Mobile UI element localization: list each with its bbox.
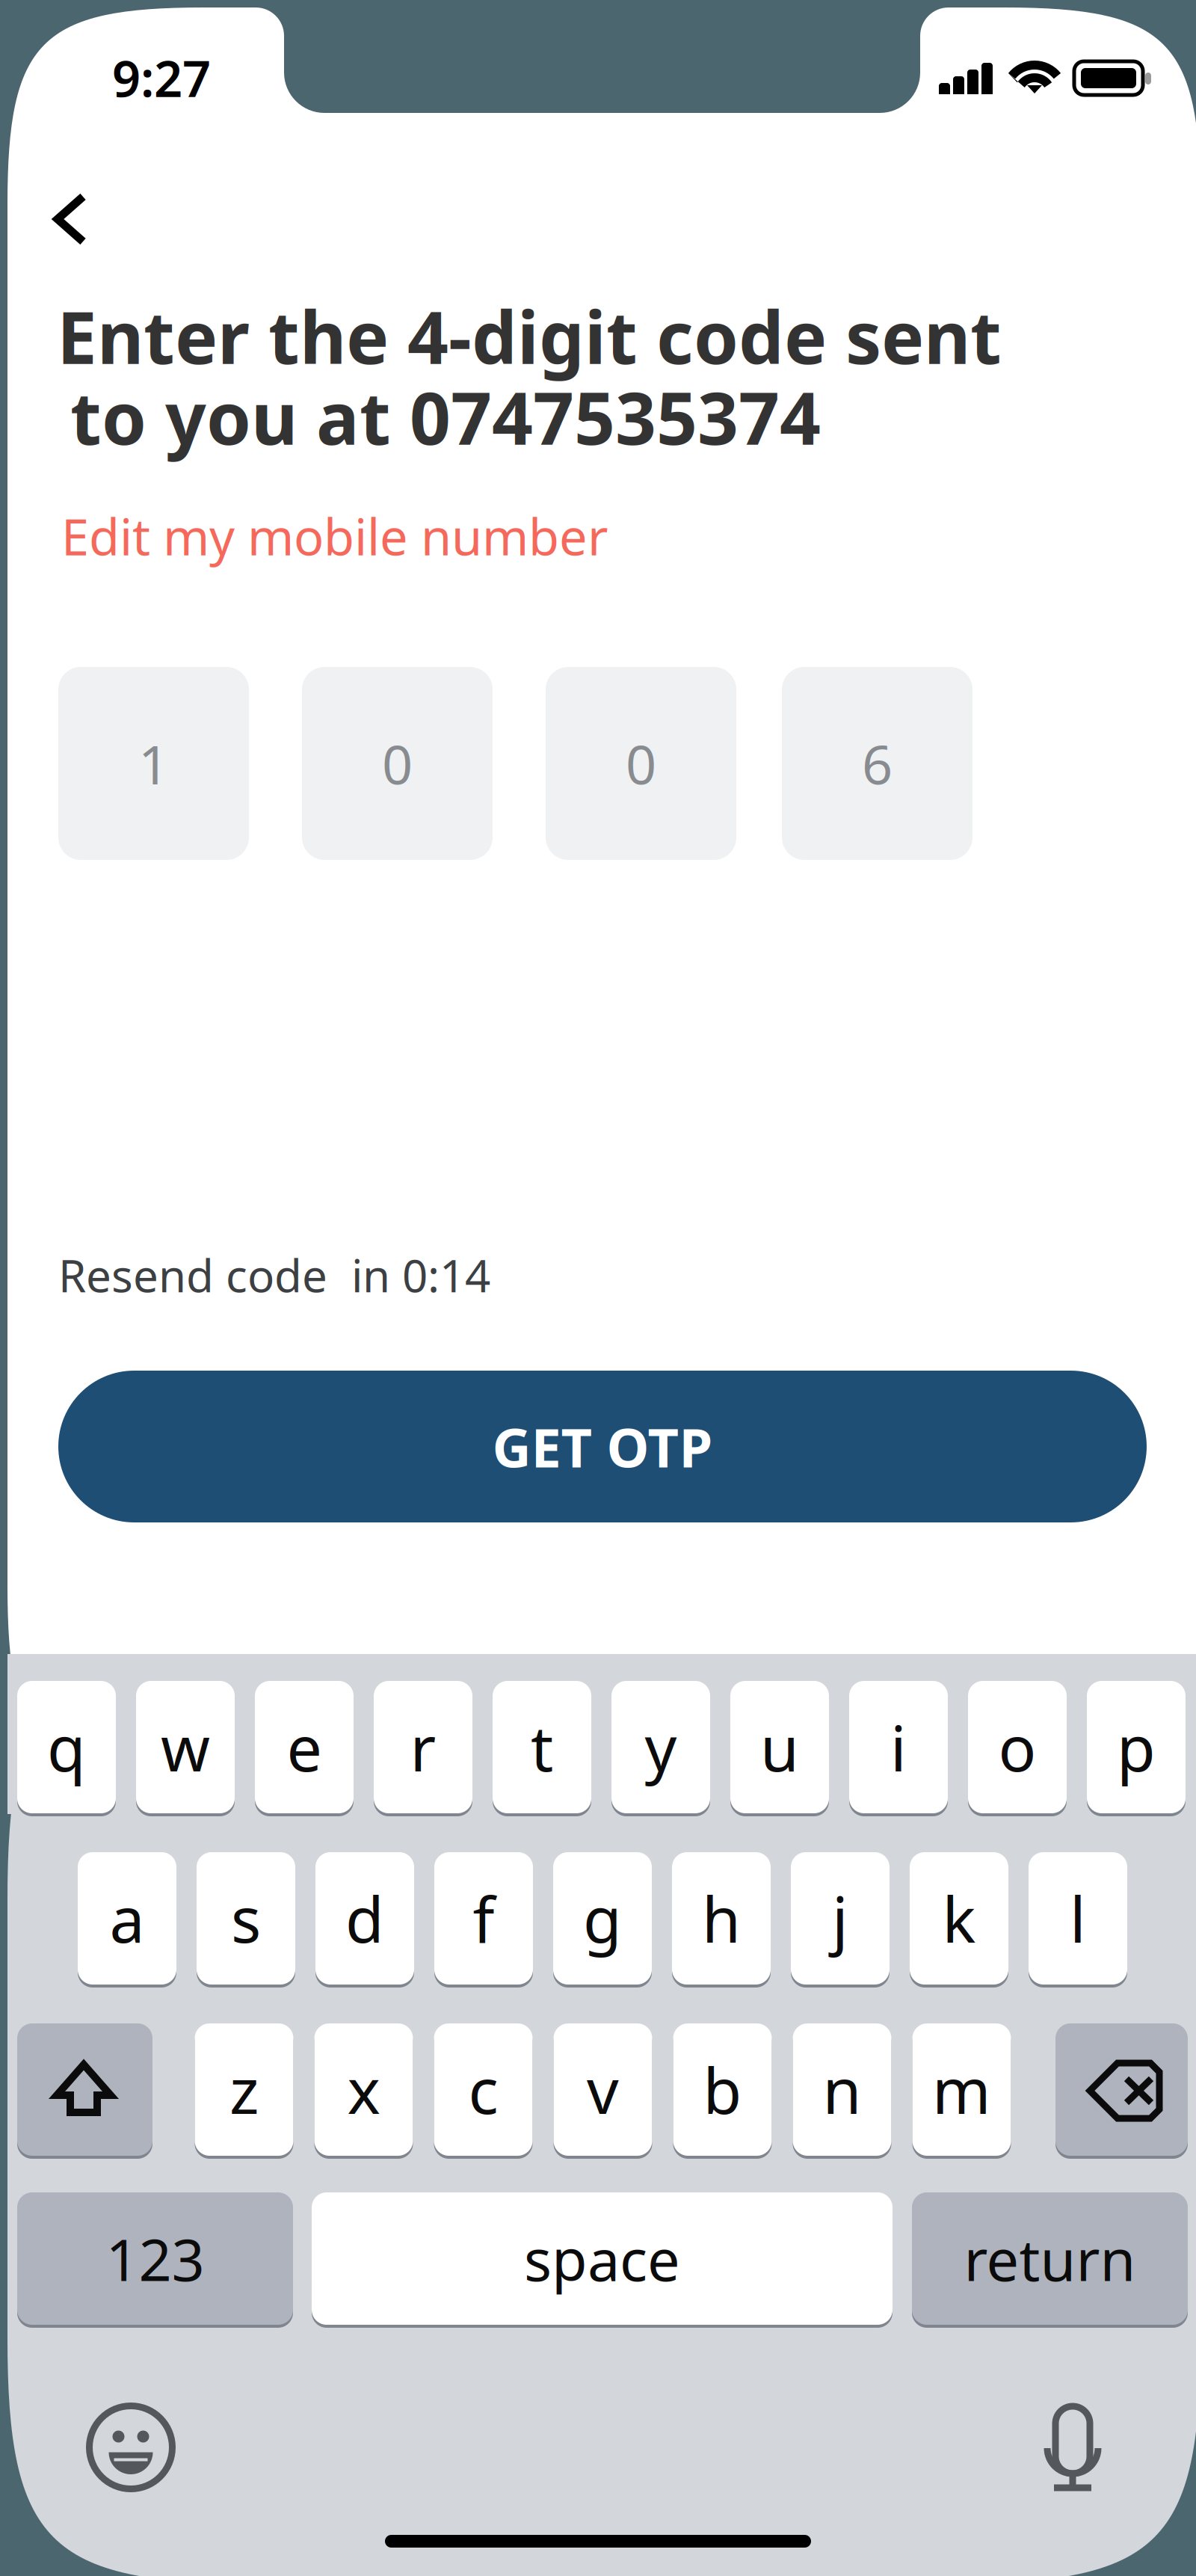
button[interactable]: l: [1029, 1852, 1127, 1985]
staticText: Resend code in 0:14: [58, 1245, 490, 1305]
staticText: to you at 0747535374: [70, 369, 821, 465]
button[interactable]: Back: [37, 179, 142, 284]
staticText: l: [1070, 1877, 1086, 1960]
staticText: GET OTP: [492, 1411, 713, 1482]
button[interactable]: t: [493, 1681, 591, 1813]
button[interactable]: a: [78, 1852, 176, 1985]
staticText: g: [583, 1877, 622, 1960]
button[interactable]: y: [611, 1681, 710, 1813]
staticText: e: [287, 1705, 322, 1789]
staticText: n: [823, 2048, 861, 2131]
button[interactable]: Shift: [17, 2023, 152, 2156]
button[interactable]: m: [912, 2023, 1011, 2156]
staticText: q: [47, 1705, 86, 1789]
staticText: t: [531, 1705, 553, 1789]
button[interactable]: q: [17, 1681, 116, 1813]
staticText: u: [760, 1705, 799, 1789]
staticText: r: [410, 1705, 436, 1789]
staticText: w: [161, 1705, 210, 1789]
button[interactable]: 0: [546, 667, 736, 860]
button[interactable]: g: [553, 1852, 652, 1985]
staticText: k: [942, 1877, 976, 1960]
staticText: i: [890, 1705, 907, 1789]
button[interactable]: w: [136, 1681, 235, 1813]
staticText: a: [110, 1877, 145, 1960]
button[interactable]: r: [374, 1681, 472, 1813]
staticText: s: [231, 1877, 261, 1960]
staticText: 9:27: [112, 45, 211, 111]
staticText: j: [832, 1877, 848, 1960]
staticText: h: [702, 1877, 741, 1960]
button[interactable]: b: [673, 2023, 772, 2156]
staticText: d: [345, 1877, 384, 1960]
button[interactable]: 123: [17, 2192, 293, 2325]
button[interactable]: Dictation: [1045, 2409, 1100, 2492]
button[interactable]: c: [434, 2023, 533, 2156]
button[interactable]: p: [1087, 1681, 1186, 1813]
button[interactable]: space: [312, 2192, 893, 2325]
button[interactable]: GET OTP: [58, 1371, 1147, 1522]
button[interactable]: 1: [58, 667, 249, 860]
button[interactable]: s: [197, 1852, 295, 1985]
button[interactable]: v: [554, 2023, 652, 2156]
button[interactable]: return: [912, 2192, 1188, 2325]
button[interactable]: Edit my mobile number: [61, 508, 734, 565]
staticText: 1: [138, 728, 169, 799]
staticText: Enter the 4-digit code sent: [57, 288, 1002, 384]
button[interactable]: n: [793, 2023, 891, 2156]
staticText: space: [524, 2220, 680, 2297]
staticText: b: [703, 2048, 742, 2131]
button[interactable]: Emoji: [89, 2406, 172, 2489]
staticText: 123: [106, 2220, 204, 2297]
button[interactable]: i: [849, 1681, 948, 1813]
button[interactable]: z: [195, 2023, 293, 2156]
staticText: 0: [626, 728, 656, 799]
staticText: c: [468, 2048, 498, 2131]
staticText: Edit my mobile number: [61, 503, 608, 569]
staticText: return: [964, 2220, 1136, 2297]
button[interactable]: x: [314, 2023, 413, 2156]
button[interactable]: k: [910, 1852, 1008, 1985]
button[interactable]: 0: [302, 667, 493, 860]
button[interactable]: e: [255, 1681, 354, 1813]
button[interactable]: o: [968, 1681, 1067, 1813]
button[interactable]: h: [672, 1852, 771, 1985]
button[interactable]: d: [315, 1852, 414, 1985]
staticText: p: [1117, 1705, 1156, 1789]
staticText: 0: [382, 728, 413, 799]
staticText: y: [645, 1705, 677, 1789]
staticText: 6: [862, 728, 893, 799]
button[interactable]: u: [730, 1681, 829, 1813]
button[interactable]: Delete: [1055, 2023, 1188, 2156]
button[interactable]: j: [791, 1852, 890, 1985]
staticText: x: [347, 2048, 380, 2131]
staticText: f: [473, 1877, 494, 1960]
staticText: m: [932, 2048, 991, 2131]
staticText: z: [229, 2048, 259, 2131]
button[interactable]: 6: [782, 667, 972, 860]
staticText: v: [587, 2048, 619, 2131]
button[interactable]: f: [434, 1852, 533, 1985]
staticText: o: [998, 1705, 1036, 1789]
